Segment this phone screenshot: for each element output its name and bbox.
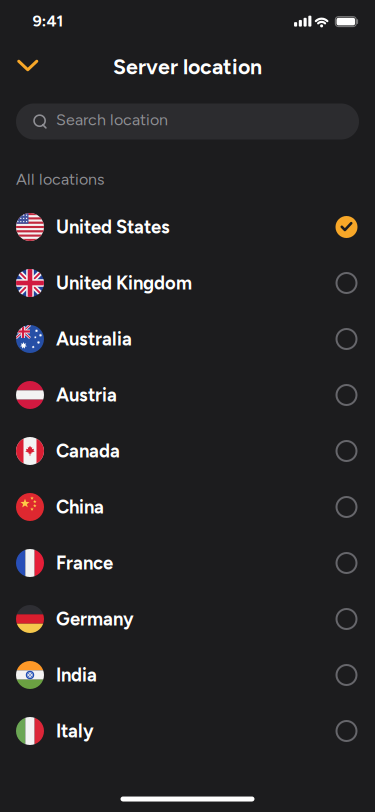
staticText: France xyxy=(56,552,113,574)
staticText: All locations xyxy=(16,170,104,189)
staticText: Canada xyxy=(56,440,120,462)
staticText: Australia xyxy=(56,328,132,350)
staticText: United Kingdom xyxy=(56,272,192,294)
staticText: Germany xyxy=(56,608,134,630)
staticText: 9:41 xyxy=(32,11,63,31)
staticText: India xyxy=(56,664,97,686)
staticText: Austria xyxy=(56,384,117,406)
staticText: China xyxy=(56,496,104,518)
staticText: Italy xyxy=(56,720,94,742)
staticText: United States xyxy=(56,216,170,238)
staticText: Server location xyxy=(113,54,262,80)
staticText: Search location xyxy=(56,110,168,129)
